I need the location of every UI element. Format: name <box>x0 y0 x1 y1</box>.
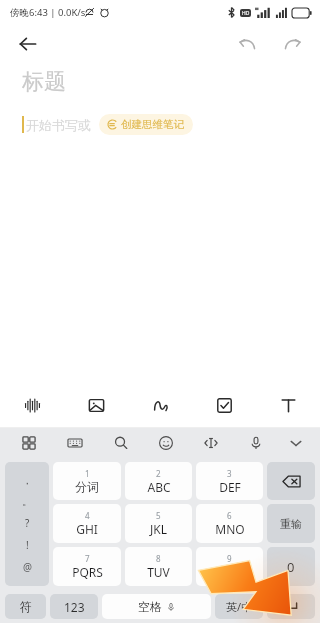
staticText: @ <box>23 560 32 574</box>
staticText: 傍晚6:43 | 0.0K/s <box>10 6 86 19</box>
staticText: 。 <box>22 495 32 508</box>
button[interactable]: 创建思维笔记 <box>99 114 193 135</box>
staticText: 9 <box>227 553 232 564</box>
staticText: 7 <box>85 553 90 564</box>
button[interactable]: 0 <box>267 547 315 586</box>
button[interactable]: Apps <box>6 428 52 458</box>
button[interactable]: 2 <box>125 462 192 500</box>
button[interactable]: Undo <box>232 29 262 59</box>
staticText: HD <box>242 10 250 17</box>
staticText: TUV <box>147 564 170 580</box>
button[interactable]: Redo <box>278 29 308 59</box>
button[interactable]: Voice <box>0 383 64 427</box>
button[interactable]: 英/中 <box>215 594 263 619</box>
button[interactable]: Checklist <box>192 383 256 427</box>
button[interactable]: 空格 <box>102 594 211 619</box>
button[interactable]: 3 <box>196 462 263 500</box>
button[interactable]: Move cursor <box>188 428 233 458</box>
button[interactable]: 6 <box>196 504 263 543</box>
button[interactable]: 7 <box>53 547 121 586</box>
button[interactable]: 1 <box>53 462 121 500</box>
staticText: 5 <box>156 510 161 521</box>
staticText: 符 <box>20 599 32 614</box>
button[interactable]: Voice input <box>233 428 278 458</box>
staticText: 标题 <box>22 68 66 96</box>
staticText: 创建思维笔记 <box>121 118 184 131</box>
staticText: WXYZ <box>214 564 246 580</box>
button[interactable]: 9 <box>196 547 263 586</box>
button[interactable]: Handwriting <box>128 383 192 427</box>
button[interactable]: 8 <box>125 547 192 586</box>
staticText: PQRS <box>72 564 103 580</box>
button[interactable]: Text format <box>256 383 320 427</box>
button[interactable]: Keyboard layout <box>52 428 98 458</box>
button[interactable]: Hide keyboard <box>278 428 314 458</box>
button[interactable]: Image <box>64 383 128 427</box>
button[interactable]: 符 <box>5 594 46 619</box>
staticText: JKL <box>150 521 167 537</box>
button[interactable]: Back <box>12 28 44 60</box>
staticText: 分词 <box>75 479 99 494</box>
staticText: ， <box>22 474 32 487</box>
button[interactable]: 123 <box>50 594 98 619</box>
button[interactable]: Backspace <box>267 462 315 500</box>
staticText: DEF <box>219 479 241 495</box>
staticText: 123 <box>64 599 85 615</box>
button[interactable]: 重输 <box>267 504 315 543</box>
staticText: 3 <box>227 468 232 479</box>
staticText: 1 <box>85 468 90 479</box>
staticText: 重输 <box>280 517 302 531</box>
staticText: 6 <box>227 510 232 521</box>
staticText: 英/中 <box>226 599 253 614</box>
staticText: ABC <box>147 479 171 495</box>
button[interactable]: Emoji <box>143 428 188 458</box>
staticText: 2 <box>156 468 161 479</box>
staticText: 空格 <box>138 599 162 614</box>
staticText: ? <box>25 516 30 530</box>
staticText: 开始书写或 <box>26 117 91 133</box>
staticText: 4 <box>85 510 90 521</box>
button[interactable]: Enter <box>267 594 315 619</box>
staticText: ! <box>26 538 29 552</box>
button[interactable]: 5 <box>125 504 192 543</box>
button[interactable]: Search <box>98 428 143 458</box>
staticText: 8 <box>156 553 161 564</box>
staticText: MNO <box>215 521 245 537</box>
button[interactable]: ， <box>5 462 49 586</box>
button[interactable]: 4 <box>53 504 121 543</box>
staticText: GHI <box>76 521 98 537</box>
staticText: 0 <box>287 558 295 576</box>
